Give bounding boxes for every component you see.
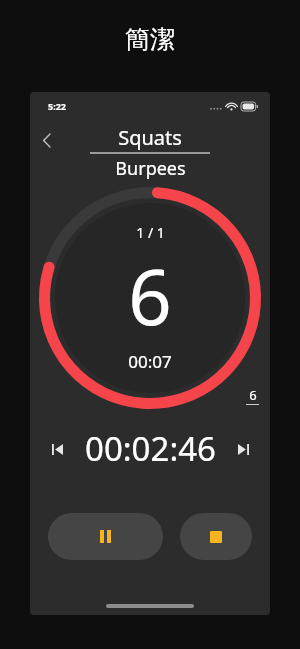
staticText: 1 / 1 [136, 223, 165, 242]
staticText: 6 [249, 386, 257, 404]
staticText: 00:07 [128, 350, 172, 373]
button[interactable]: Stop [180, 513, 252, 560]
staticText: 6 [128, 244, 172, 348]
button[interactable]: 6 [246, 386, 259, 405]
staticText: Burpees [115, 156, 186, 181]
staticText: Squats [118, 124, 182, 151]
staticText: 簡潔 [125, 24, 175, 55]
staticText: 00:02:46 [85, 426, 216, 471]
button[interactable]: Previous [44, 436, 70, 462]
button[interactable]: Back [32, 126, 60, 154]
button[interactable]: Next [230, 436, 256, 462]
button[interactable]: Pause [48, 513, 163, 560]
staticText: 5:22 [48, 100, 66, 112]
